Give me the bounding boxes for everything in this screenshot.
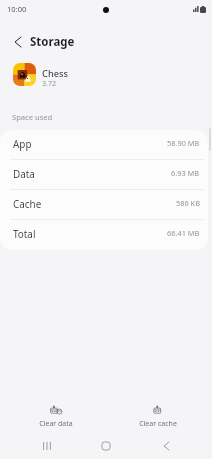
staticText: Chess	[42, 67, 69, 80]
staticText: 586 KB	[176, 198, 200, 208]
button[interactable]: Clear cache	[122, 405, 194, 429]
staticText: 66.41 MB	[167, 228, 200, 238]
button[interactable]: Recents	[32, 436, 62, 456]
button[interactable]: Back	[151, 436, 181, 456]
staticText: 10:00	[7, 4, 27, 14]
staticText: Cache	[13, 197, 42, 210]
staticText: App	[13, 137, 32, 150]
staticText: 6.93 MB	[171, 168, 200, 178]
staticText: 58.90 MB	[167, 138, 200, 148]
staticText: Storage	[30, 34, 75, 50]
button[interactable]: Home	[91, 436, 121, 456]
staticText: 3.72	[42, 78, 57, 88]
staticText: Clear cache	[122, 419, 194, 429]
button[interactable]: App	[0, 130, 208, 160]
button[interactable]: Total	[0, 220, 208, 250]
staticText: Total	[13, 227, 36, 240]
button[interactable]: Clear data	[20, 405, 92, 429]
staticText: Data	[13, 167, 35, 180]
button[interactable]: Back	[8, 32, 28, 52]
button[interactable]: Data	[0, 160, 208, 190]
button[interactable]: Cache	[0, 190, 208, 220]
staticText: Space used	[12, 112, 53, 122]
staticText: Clear data	[20, 419, 92, 429]
